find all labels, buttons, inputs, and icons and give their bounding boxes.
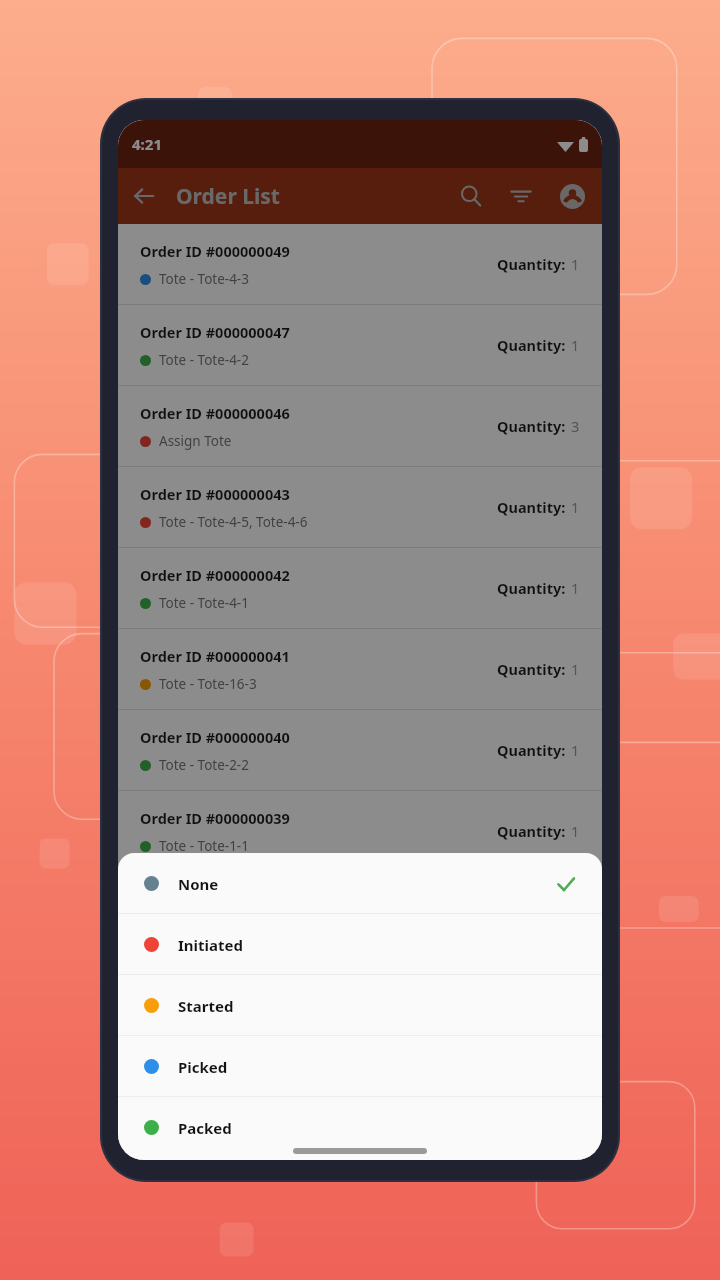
button[interactable]: Account [546,170,598,222]
staticText: Started [178,996,234,1016]
button[interactable]: Filter [496,171,546,221]
staticText: Order ID #000000041 [140,646,290,666]
staticText: Tote - Tote-3-1 [159,999,249,1017]
staticText: Quantity: [497,740,566,760]
button[interactable]: Order ID #000000040 [118,710,602,791]
button[interactable]: Order ID #000000041 [118,629,602,710]
staticText: Tote - Tote-4-5, Tote-4-6 [159,513,308,531]
staticText: Quantity: [497,416,566,436]
button[interactable]: Order ID #000000038 [118,872,602,953]
staticText: 1 [571,335,580,355]
button[interactable]: Order ID #000000049 [118,224,602,305]
button[interactable]: Order ID #000000043 [118,467,602,548]
button[interactable]: Back [118,170,170,222]
staticText: Quantity: [497,821,566,841]
staticText: Quantity: [497,335,566,355]
staticText: Initiated [178,935,243,955]
staticText: Tote - Tote-16-3 [159,675,257,693]
staticText: Quantity: [497,659,566,679]
button[interactable]: Started [118,975,602,1036]
button[interactable]: Search [446,171,496,221]
button[interactable]: None [118,853,602,914]
staticText: Order ID #000000043 [140,484,290,504]
staticText: 1 [571,740,580,760]
staticText: Quantity: [497,578,566,598]
staticText: Assign Tote [159,432,232,450]
button[interactable]: Order ID #000000042 [118,548,602,629]
staticText: Order List [176,182,280,211]
staticText: 1 [571,578,580,598]
button[interactable]: Order ID #000000047 [118,305,602,386]
button[interactable]: Order ID #000000037 [118,953,602,1034]
staticText: Order ID #000000047 [140,322,290,342]
staticText: Picked [178,1057,228,1077]
button[interactable]: Order ID #000000046 [118,386,602,467]
staticText: Order ID #000000039 [140,808,290,828]
button[interactable]: Order ID #000000036 [118,1034,602,1115]
staticText: Order ID #000000042 [140,565,290,585]
staticText: Tote - Tote-2-2 [159,756,249,774]
staticText: Tote - Tote-1-1 [159,837,249,855]
button[interactable]: Packed [118,1097,602,1158]
staticText: Order ID #000000036 [140,1051,290,1071]
staticText: Order ID #000000046 [140,403,290,423]
staticText: Quantity: [497,497,566,517]
staticText: None [178,874,219,894]
staticText: 4:21 [132,134,162,154]
staticText: Tote - Tote-4-2 [159,351,249,369]
button[interactable]: Order ID #000000039 [118,791,602,872]
staticText: 1 [571,497,580,517]
staticText: Order ID #000000038 [140,889,290,909]
staticText: Packed [178,1118,232,1138]
staticText: Tote - Tote-4-1 [159,594,249,612]
button[interactable]: Picked [118,1036,602,1097]
staticText: 3 [571,416,580,436]
staticText: 1 [571,254,580,274]
staticText: 1 [571,821,580,841]
staticText: Order ID #000000040 [140,727,290,747]
staticText: 1 [571,659,580,679]
staticText: Tote - Tote-4-3 [159,270,249,288]
staticText: Order ID #000000049 [140,241,290,261]
button[interactable]: Initiated [118,914,602,975]
staticText: Quantity: [497,254,566,274]
